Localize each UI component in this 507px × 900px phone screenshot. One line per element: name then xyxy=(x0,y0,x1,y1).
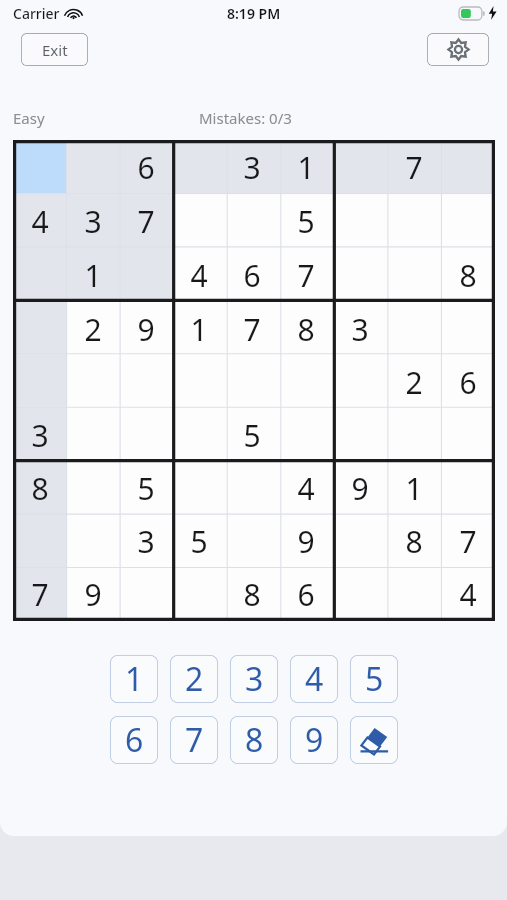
button[interactable]: 3 xyxy=(13,409,66,462)
button[interactable]: 9 xyxy=(279,515,333,568)
button[interactable] xyxy=(13,302,66,356)
button[interactable]: 4 xyxy=(441,568,495,621)
button[interactable] xyxy=(172,409,225,462)
button[interactable] xyxy=(172,462,225,515)
staticText: 5 xyxy=(137,468,155,509)
button[interactable]: Exit xyxy=(21,33,88,66)
button[interactable] xyxy=(333,409,387,462)
button[interactable] xyxy=(441,462,495,515)
button[interactable] xyxy=(172,140,225,194)
button[interactable] xyxy=(387,194,441,248)
button[interactable]: 8 xyxy=(13,462,66,515)
button[interactable] xyxy=(333,140,387,194)
button[interactable]: 4 xyxy=(13,194,66,248)
button[interactable]: 3 xyxy=(119,515,172,568)
button[interactable]: 7 xyxy=(170,716,218,764)
button[interactable] xyxy=(387,302,441,356)
button[interactable]: 8 xyxy=(441,248,495,302)
button[interactable]: 9 xyxy=(290,716,338,764)
button[interactable]: 8 xyxy=(230,716,278,764)
button[interactable] xyxy=(66,356,119,409)
button[interactable] xyxy=(119,409,172,462)
button[interactable]: 1 xyxy=(172,302,225,356)
button[interactable]: 1 xyxy=(66,248,119,302)
button[interactable]: 3 xyxy=(225,140,279,194)
button[interactable]: 3 xyxy=(230,655,278,703)
button[interactable]: Erase xyxy=(350,716,398,764)
button[interactable]: 5 xyxy=(119,462,172,515)
button[interactable] xyxy=(13,515,66,568)
button[interactable] xyxy=(441,140,495,194)
staticText: 5 xyxy=(190,521,208,562)
button[interactable]: Settings xyxy=(427,33,489,66)
button[interactable] xyxy=(225,356,279,409)
button[interactable]: 5 xyxy=(225,409,279,462)
button[interactable]: 7 xyxy=(225,302,279,356)
button[interactable]: 8 xyxy=(387,515,441,568)
button[interactable] xyxy=(333,568,387,621)
button[interactable]: 6 xyxy=(279,568,333,621)
button[interactable]: 1 xyxy=(387,462,441,515)
button[interactable]: 7 xyxy=(13,568,66,621)
button[interactable] xyxy=(387,248,441,302)
button[interactable] xyxy=(333,248,387,302)
staticText: Mistakes: 0/3 xyxy=(199,108,292,128)
button[interactable] xyxy=(279,356,333,409)
button[interactable]: 1 xyxy=(110,655,158,703)
button[interactable] xyxy=(119,248,172,302)
button[interactable]: 2 xyxy=(66,302,119,356)
button[interactable]: 2 xyxy=(170,655,218,703)
button[interactable]: 7 xyxy=(119,194,172,248)
staticText: 3 xyxy=(245,657,264,701)
button[interactable] xyxy=(225,462,279,515)
button[interactable] xyxy=(172,568,225,621)
button[interactable]: 1 xyxy=(279,140,333,194)
button[interactable]: 5 xyxy=(172,515,225,568)
button[interactable]: 9 xyxy=(333,462,387,515)
staticText: 9 xyxy=(84,574,102,615)
button[interactable] xyxy=(66,140,119,194)
staticText: 3 xyxy=(84,201,102,242)
button[interactable] xyxy=(333,356,387,409)
button[interactable]: 7 xyxy=(387,140,441,194)
button[interactable]: 6 xyxy=(110,716,158,764)
button[interactable]: 8 xyxy=(225,568,279,621)
button[interactable] xyxy=(119,568,172,621)
button[interactable]: 4 xyxy=(290,655,338,703)
button[interactable]: 4 xyxy=(172,248,225,302)
button[interactable]: 4 xyxy=(279,462,333,515)
button[interactable] xyxy=(66,462,119,515)
button[interactable]: 6 xyxy=(441,356,495,409)
button[interactable]: 5 xyxy=(279,194,333,248)
button[interactable]: 6 xyxy=(119,140,172,194)
button[interactable]: 6 xyxy=(225,248,279,302)
button[interactable]: 5 xyxy=(350,655,398,703)
staticText: 8 xyxy=(243,574,261,615)
button[interactable] xyxy=(387,568,441,621)
button[interactable] xyxy=(13,356,66,409)
button[interactable] xyxy=(225,515,279,568)
button[interactable] xyxy=(66,409,119,462)
button[interactable]: 7 xyxy=(279,248,333,302)
button[interactable] xyxy=(333,515,387,568)
button[interactable] xyxy=(441,194,495,248)
button[interactable]: 3 xyxy=(66,194,119,248)
button[interactable] xyxy=(172,194,225,248)
button[interactable] xyxy=(66,515,119,568)
button[interactable] xyxy=(441,409,495,462)
button[interactable]: 9 xyxy=(66,568,119,621)
button[interactable] xyxy=(172,356,225,409)
button[interactable]: 8 xyxy=(279,302,333,356)
button[interactable]: 2 xyxy=(387,356,441,409)
button[interactable] xyxy=(225,194,279,248)
button[interactable] xyxy=(119,356,172,409)
button[interactable] xyxy=(333,194,387,248)
button[interactable] xyxy=(441,302,495,356)
button[interactable] xyxy=(279,409,333,462)
button[interactable]: 3 xyxy=(333,302,387,356)
button[interactable] xyxy=(13,140,66,194)
button[interactable] xyxy=(387,409,441,462)
button[interactable]: 7 xyxy=(441,515,495,568)
button[interactable]: 9 xyxy=(119,302,172,356)
button[interactable] xyxy=(13,248,66,302)
